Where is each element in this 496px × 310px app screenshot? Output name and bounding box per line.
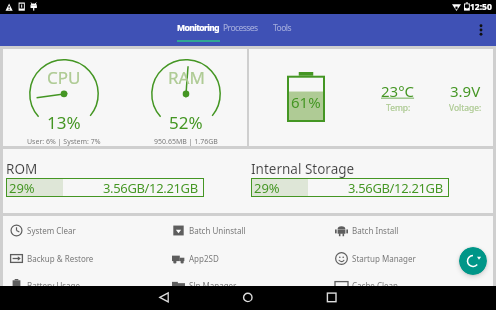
button[interactable]: Startup Manager (330, 244, 493, 272)
staticText: Monitoring (177, 22, 220, 34)
button[interactable]: 29% (6, 178, 204, 197)
staticText: CPU (47, 66, 81, 89)
staticText: 3.56GB/12.21GB (348, 179, 443, 197)
staticText: 52% (169, 111, 203, 134)
staticText: 29% (9, 179, 35, 197)
button[interactable]: More options (466, 15, 496, 45)
staticText: Battery Usage (27, 280, 81, 286)
staticText: User: 6% | System: 7% (27, 137, 101, 146)
staticText: Temp: (386, 102, 411, 114)
staticText: Batch Uninstall (189, 225, 246, 236)
button[interactable]: Refresh (459, 247, 487, 275)
button[interactable]: 29% (251, 178, 449, 197)
button[interactable]: Backup & Restore (3, 244, 167, 272)
button[interactable]: Home (224, 286, 272, 310)
staticText: 23°C (381, 81, 415, 101)
button[interactable]: Processes (222, 14, 258, 46)
staticText: Sln Manager (189, 280, 237, 286)
staticText: Processes (223, 22, 258, 34)
staticText: 61% (291, 92, 321, 112)
staticText: Internal Storage (251, 160, 355, 178)
staticText: App2SD (189, 253, 219, 264)
staticText: 3.9V (450, 81, 481, 101)
staticText: Backup & Restore (27, 253, 94, 264)
button[interactable]: Recents (308, 286, 356, 310)
staticText: 29% (254, 179, 280, 197)
button[interactable]: App2SD (167, 244, 330, 272)
staticText: ROM (6, 160, 38, 178)
staticText: Startup Manager (352, 253, 416, 264)
staticText: 13% (47, 111, 81, 134)
button[interactable]: Battery Usage (3, 271, 167, 286)
button[interactable]: Batch Install (330, 216, 493, 244)
staticText: System Clear (27, 225, 76, 236)
button[interactable]: Batch Uninstall (167, 216, 330, 244)
button[interactable]: Back (140, 286, 188, 310)
button[interactable]: System Clear (3, 216, 167, 244)
staticText: Cache Clean (352, 280, 398, 286)
staticText: Tools (273, 22, 291, 34)
staticText: RAM (168, 66, 205, 89)
staticText: 950.65MB | 1.76GB (154, 137, 218, 146)
button[interactable]: Sln Manager (167, 271, 330, 286)
staticText: 3.56GB/12.21GB (103, 179, 198, 197)
staticText: Voltage: (449, 102, 482, 114)
staticText: 12:50 (470, 1, 492, 13)
button[interactable]: Cache Clean (330, 271, 493, 286)
button[interactable]: Tools (258, 14, 306, 46)
staticText: Batch Install (352, 225, 399, 236)
button[interactable]: Monitoring (172, 14, 225, 46)
